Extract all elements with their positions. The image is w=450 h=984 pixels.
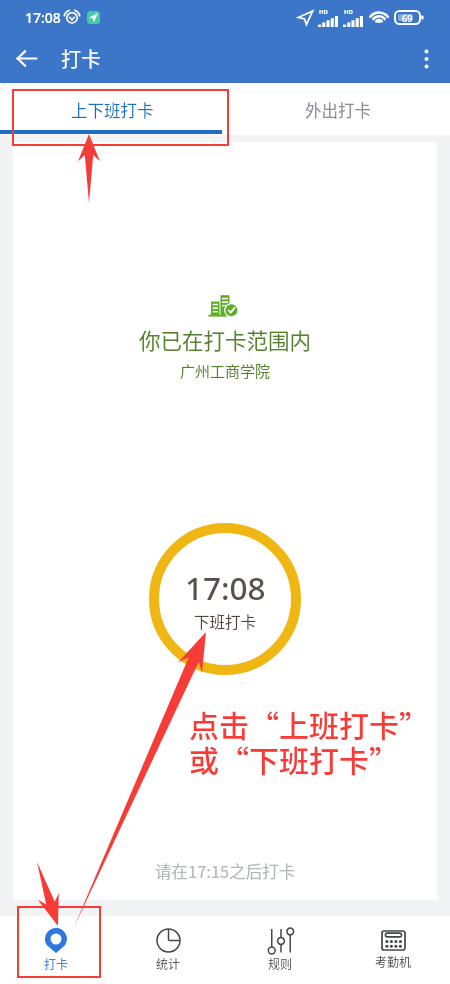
staticText: 考勤机 <box>375 953 412 970</box>
staticText: 规则 <box>268 955 293 972</box>
staticText: HD <box>344 8 353 16</box>
button[interactable]: 上下班打卡 <box>0 83 225 130</box>
button[interactable]: Back <box>0 34 53 83</box>
button[interactable]: 打卡 <box>0 916 112 984</box>
button[interactable]: More options <box>402 34 450 83</box>
staticText: 外出打卡 <box>305 98 371 122</box>
button[interactable]: 考勤机 <box>337 916 450 984</box>
button[interactable]: 统计 <box>112 916 224 984</box>
staticText: HD <box>319 8 328 16</box>
staticText: 69 <box>402 12 413 24</box>
staticText: 广州工商学院 <box>180 360 271 382</box>
button[interactable]: 外出打卡 <box>225 83 450 130</box>
staticText: 17:08 <box>185 566 266 609</box>
staticText: 打卡 <box>44 955 69 972</box>
staticText: 打卡 <box>61 44 101 73</box>
button[interactable]: 17:08 <box>149 523 301 675</box>
staticText: 17:08 <box>25 8 61 27</box>
staticText: 下班打卡 <box>194 610 257 632</box>
staticText: 请在17:15之后打卡 <box>155 859 296 883</box>
staticText: 点击“上班打卡” <box>189 702 429 745</box>
staticText: 统计 <box>156 955 181 972</box>
staticText: 上下班打卡 <box>71 98 154 122</box>
staticText: 或“下班打卡” <box>189 737 399 780</box>
staticText: 你已在打卡范围内 <box>139 324 312 355</box>
button[interactable]: 规则 <box>224 916 337 984</box>
